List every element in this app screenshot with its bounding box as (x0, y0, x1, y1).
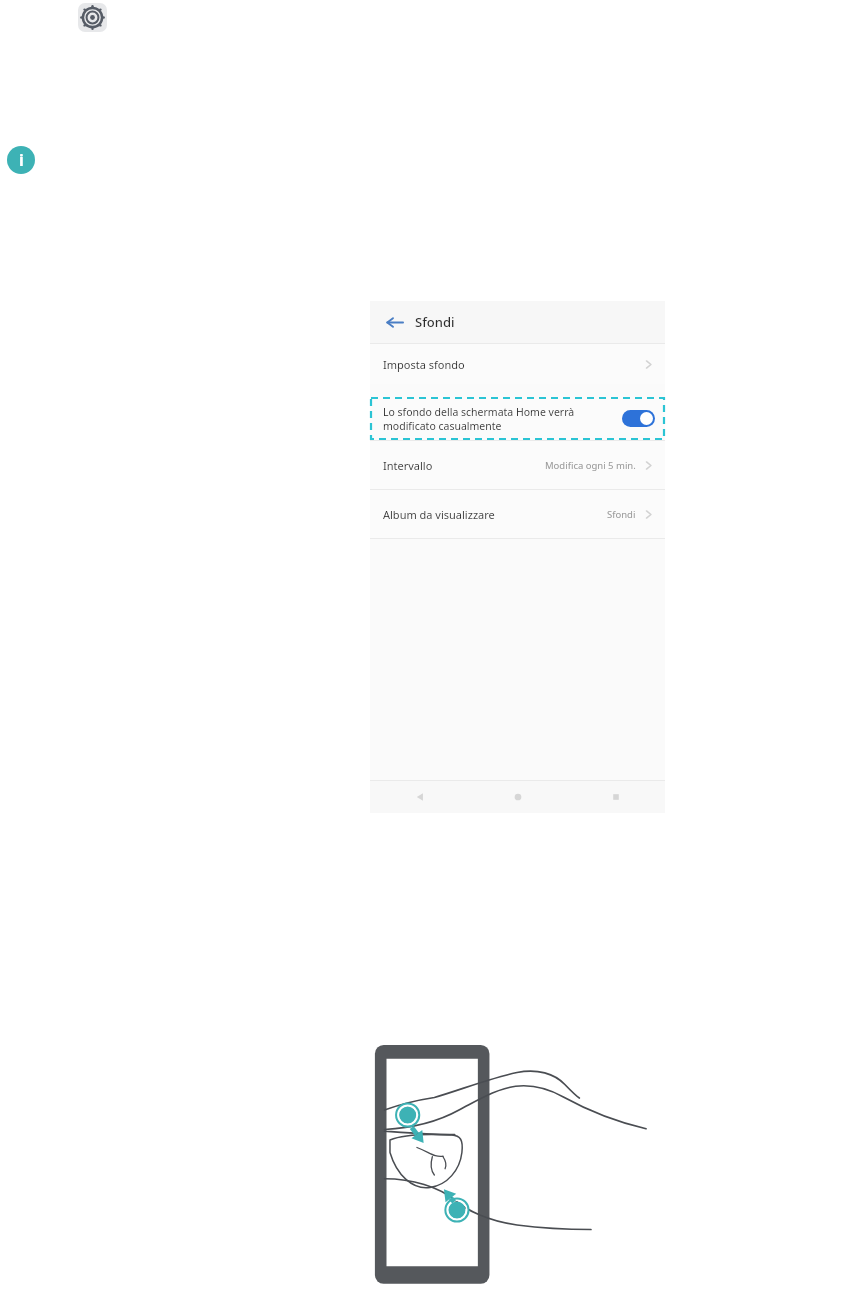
button[interactable]: Home (469, 781, 567, 813)
button[interactable]: Back (381, 309, 407, 335)
button[interactable] (622, 410, 655, 427)
button[interactable]: Imposta sfondo (370, 344, 665, 384)
button[interactable]: Settings (78, 3, 107, 32)
staticText: Album da visualizzare (383, 507, 495, 522)
button[interactable]: Lo sfondo della schermata Home verrà mod… (383, 397, 655, 440)
staticText: i (19, 149, 24, 171)
staticText: Intervallo (383, 458, 433, 473)
staticText: Sfondi (607, 508, 636, 521)
staticText: Modifica ogni 5 min. (545, 459, 636, 472)
button[interactable]: Info (7, 146, 35, 174)
staticText: Sfondi (415, 313, 455, 331)
button[interactable]: Intervallo (370, 441, 665, 489)
staticText: Imposta sfondo (383, 357, 465, 372)
staticText: Lo sfondo della schermata Home verrà mod… (383, 405, 616, 433)
button[interactable]: Album da visualizzare (370, 490, 665, 538)
button[interactable]: Recents (567, 781, 665, 813)
